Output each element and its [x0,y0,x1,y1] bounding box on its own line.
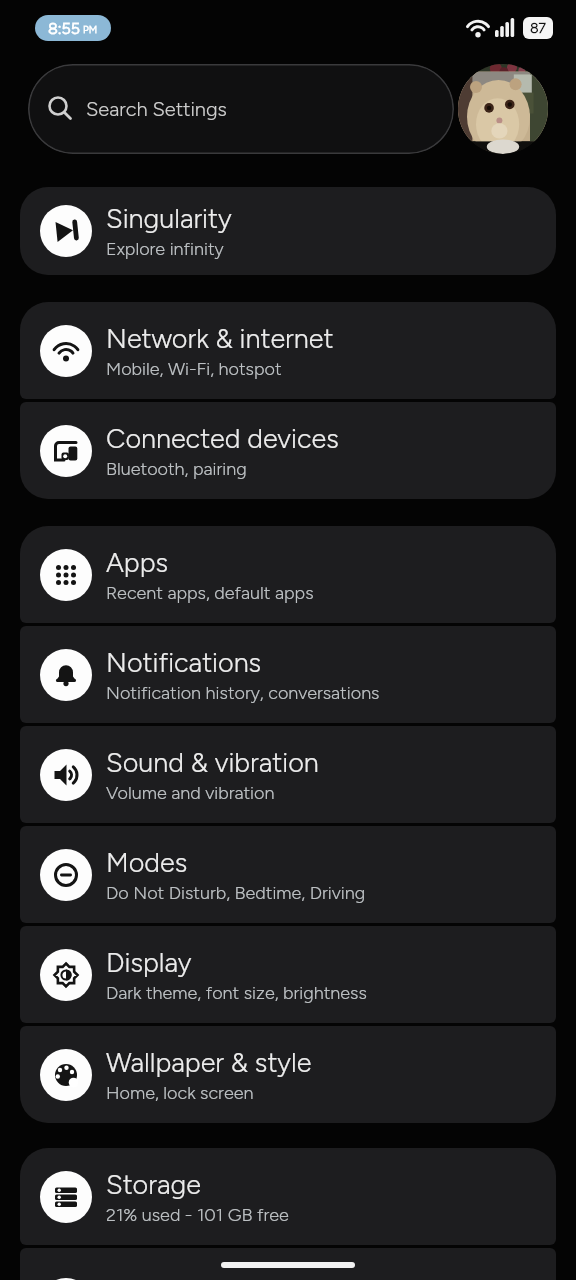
staticText: Sound & vibration [106,746,319,778]
button[interactable]: Wallpaper & style [20,1026,556,1123]
staticText: 87 [530,20,547,37]
staticText: Bluetooth, pairing [106,458,247,480]
staticText: Recent apps, default apps [106,582,314,604]
button[interactable]: Display [20,926,556,1023]
button[interactable]: Backup your apps and data [20,1248,556,1280]
staticText: Do Not Disturb, Bedtime, Driving [106,882,366,904]
staticText: Home, lock screen [106,1082,254,1104]
staticText: Explore infinity [106,238,224,260]
staticText: Singularity [106,202,232,234]
staticText: Apps [106,546,169,578]
button[interactable]: Connected devices [20,402,556,499]
staticText: Notification history, conversations [106,682,380,704]
staticText: Wallpaper & style [106,1046,312,1078]
staticText: Connected devices [106,422,339,454]
staticText: Mobile, Wi-Fi, hotspot [106,358,282,380]
button[interactable]: Modes [20,826,556,923]
staticText: Notifications [106,646,262,678]
staticText: 21% used - 101 GB free [106,1204,289,1226]
staticText: PM [83,23,98,35]
button[interactable] [458,64,548,154]
staticText: Dark theme, font size, brightness [106,982,367,1004]
button[interactable]: Network & internet [20,302,556,399]
button[interactable]: Notifications [20,626,556,723]
staticText: Network & internet [106,322,334,354]
staticText: Modes [106,846,188,878]
button[interactable]: Storage [20,1148,556,1245]
staticText: 8:55 [48,19,80,38]
button[interactable]: Search Settings [28,64,454,154]
staticText: Display [106,946,192,978]
staticText: Storage [106,1168,201,1200]
button[interactable]: Singularity [20,187,556,275]
button[interactable]: Apps [20,526,556,623]
button[interactable]: Sound & vibration [20,726,556,823]
staticText: Volume and vibration [106,782,275,804]
staticText: Search Settings [86,97,227,121]
